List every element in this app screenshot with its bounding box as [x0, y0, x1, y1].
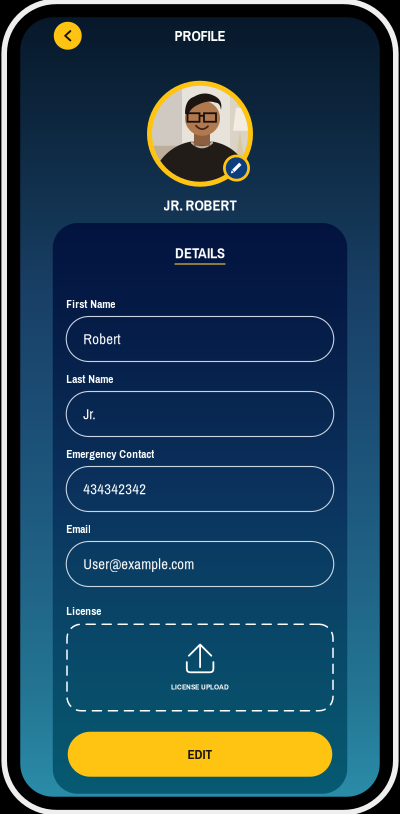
staticText: DETAILS [175, 243, 225, 263]
staticText: PROFILE [174, 26, 225, 46]
staticText: EDIT [187, 745, 212, 763]
staticText: Emergency Contact [66, 446, 154, 462]
staticText: First Name [66, 296, 115, 312]
button[interactable]: Edit profile photo [223, 155, 250, 182]
button[interactable]: LICENSE UPLOAD [66, 623, 334, 711]
staticText: Jr. [83, 404, 95, 424]
staticText: Email [66, 521, 91, 537]
staticText: 434342342 [83, 479, 146, 499]
staticText: User@example.com [83, 554, 194, 574]
button[interactable]: Back [54, 22, 82, 50]
staticText: License [66, 603, 101, 619]
staticText: Robert [83, 329, 120, 349]
staticText: JR. ROBERT [163, 195, 236, 215]
staticText: LICENSE UPLOAD [171, 681, 229, 692]
button[interactable]: EDIT [68, 732, 332, 777]
staticText: Last Name [66, 371, 113, 387]
